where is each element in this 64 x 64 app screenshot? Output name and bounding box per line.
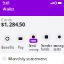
button[interactable]: Monthly statement <box>0 53 64 64</box>
staticText: NEW <box>30 39 36 42</box>
staticText: $1,284.50 <box>1 21 25 28</box>
staticText: Monthly statement <box>8 56 47 61</box>
staticText: Manage cards <box>53 44 64 51</box>
staticText: Wallet <box>2 6 14 11</box>
staticText: Cards <box>1 17 12 22</box>
button[interactable]: NEW <box>27 33 39 51</box>
staticText: Benefits <box>1 46 13 49</box>
staticText: Pay <box>18 46 23 49</box>
staticText: 9:41 <box>2 0 9 6</box>
button[interactable]: Manage cards <box>53 33 64 51</box>
staticText: Transfer funds <box>41 44 52 51</box>
staticText: Send money <box>29 44 38 51</box>
button[interactable]: Benefits <box>1 35 13 49</box>
button[interactable]: Pay <box>14 35 26 49</box>
button[interactable]: Transfer funds <box>40 33 52 51</box>
